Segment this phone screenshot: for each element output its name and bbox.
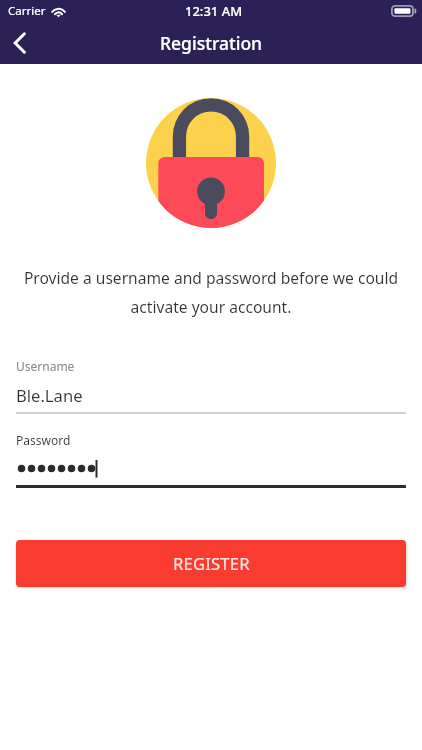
- button[interactable]: Username: [16, 358, 406, 414]
- button[interactable]: Back: [2, 25, 38, 61]
- staticText: Registration: [160, 31, 263, 55]
- staticText: Password: [16, 432, 71, 448]
- staticText: REGISTER: [173, 552, 250, 575]
- button[interactable]: Password: [16, 432, 406, 488]
- button[interactable]: REGISTER: [16, 540, 406, 587]
- staticText: Carrier: [8, 3, 46, 19]
- staticText: Ble.Lane: [16, 384, 83, 407]
- staticText: Provide a username and password before w…: [14, 267, 408, 317]
- staticText: 12:31 AM: [185, 2, 243, 20]
- staticText: Username: [16, 358, 75, 374]
